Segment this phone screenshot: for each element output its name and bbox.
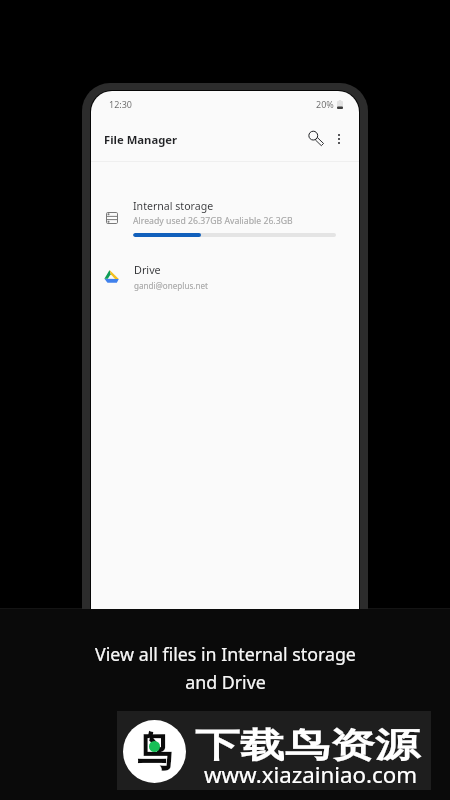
staticText: Already used 26.37GB Avaliable 26.3GB: [133, 215, 293, 227]
staticText: 鸟: [137, 725, 171, 778]
staticText: www.xiazainiao.com: [204, 759, 418, 789]
staticText: View all files in Internal storage and D…: [95, 642, 356, 694]
button[interactable]: Internal storage: [91, 187, 359, 247]
staticText: 20%: [316, 98, 334, 110]
staticText: gandi@oneplus.net: [134, 280, 208, 291]
staticText: 12:30: [109, 98, 133, 110]
button[interactable]: Search: [302, 124, 330, 152]
button[interactable]: More options: [325, 125, 353, 153]
staticText: 下载鸟资源: [195, 724, 420, 767]
staticText: Drive: [134, 262, 161, 277]
staticText: File Manager: [104, 132, 178, 147]
button[interactable]: Drive: [91, 255, 359, 301]
staticText: Internal storage: [133, 199, 214, 213]
